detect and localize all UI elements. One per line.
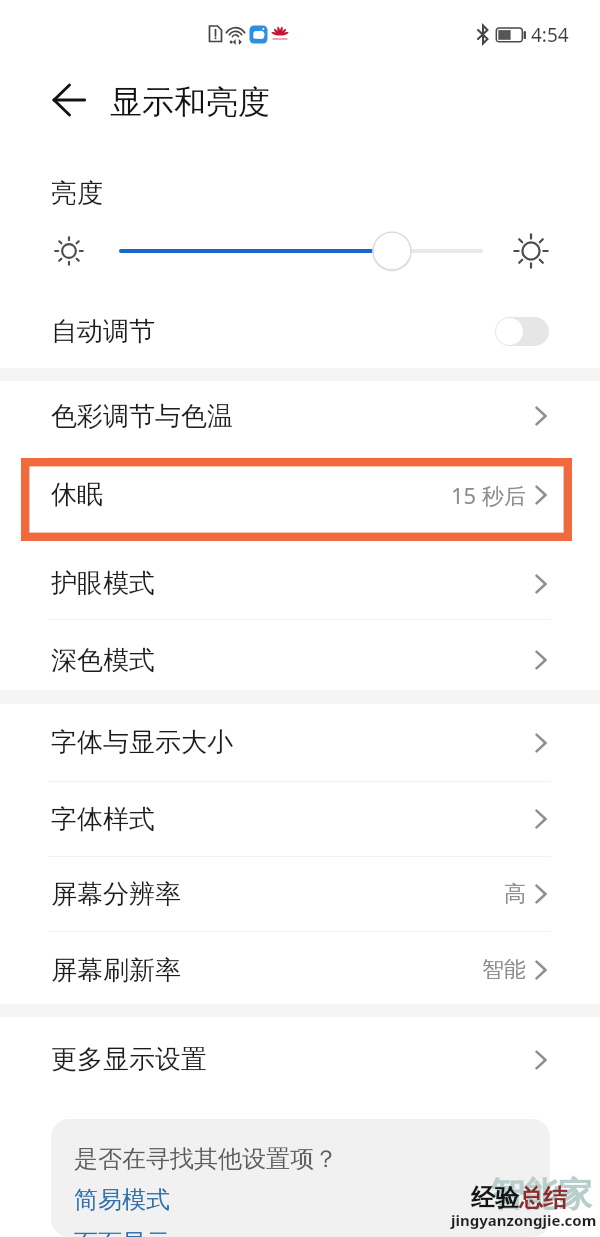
staticText: 字体与显示大小 — [51, 726, 233, 759]
button[interactable]: 更多显示设置 — [0, 1017, 600, 1102]
button[interactable]: 休眠 — [0, 458, 600, 535]
staticText: 护眼模式 — [51, 567, 155, 600]
staticText: 色彩调节与色温 — [51, 400, 233, 433]
button[interactable]: 屏幕刷新率 — [0, 932, 600, 1004]
button[interactable]: 字体样式 — [0, 782, 600, 856]
staticText: 深色模式 — [51, 644, 155, 677]
staticText: 是否在寻找其他设置项？ — [74, 1144, 338, 1174]
staticText: 亮度 — [51, 177, 103, 210]
button[interactable]: 色彩调节与色温 — [0, 381, 600, 457]
staticText: 总结 — [519, 1183, 567, 1213]
staticText: jingyanzongjie.com — [451, 1210, 597, 1230]
staticText: 高 — [504, 880, 526, 908]
button[interactable]: 深色模式 — [0, 620, 600, 690]
staticText: 显示和亮度 — [110, 82, 270, 122]
button[interactable]: 屏幕分辨率 — [0, 857, 600, 931]
staticText: 屏幕分辨率 — [51, 878, 181, 911]
button[interactable]: 简易模式 — [74, 1185, 170, 1215]
staticText: 字体样式 — [51, 803, 155, 836]
button[interactable]: 自动调节 — [0, 295, 600, 368]
staticText: 经验 — [471, 1183, 519, 1213]
button[interactable]: 护眼模式 — [0, 536, 600, 619]
button[interactable]: Back — [38, 69, 100, 131]
staticText: 屏幕刷新率 — [51, 954, 181, 987]
staticText: 更多显示设置 — [51, 1043, 207, 1076]
staticText: 智能 — [482, 956, 526, 984]
button[interactable]: Brightness slider — [372, 231, 412, 271]
staticText: 15 秒后 — [451, 480, 526, 510]
staticText: 智能家 — [490, 1173, 592, 1216]
button[interactable]: 字体与显示大小 — [0, 704, 600, 781]
staticText: 4:54 — [531, 22, 569, 48]
button[interactable]: 页面显示 — [74, 1228, 170, 1237]
staticText: 自动调节 — [51, 315, 155, 348]
staticText: 休眠 — [51, 478, 103, 511]
